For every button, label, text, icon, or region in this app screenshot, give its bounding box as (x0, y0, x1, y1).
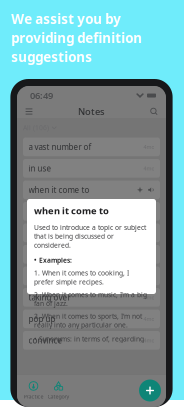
button[interactable]: lots of (23, 266, 160, 285)
button[interactable]: convince (23, 331, 160, 350)
staticText: 1. When it comes to cooking, I prefer si… (34, 269, 129, 286)
staticText: Used to introduce a topic or subject tha… (34, 223, 146, 250)
staticText: We assist you by (11, 10, 121, 28)
button[interactable]: Menu (22, 105, 36, 117)
staticText: suggestions (11, 48, 92, 66)
staticText: 4mo (143, 315, 154, 322)
staticText: providing definition (11, 29, 142, 47)
button[interactable]: as well as (23, 202, 160, 221)
staticText: as well as (29, 206, 64, 217)
staticText: Category (47, 393, 69, 400)
staticText: 4mo (143, 294, 154, 301)
staticText: 4mo (143, 229, 154, 236)
button[interactable]: Category (46, 377, 71, 403)
staticText: • Synonyms: in terms of, regarding (34, 334, 144, 343)
staticText: a vast number of (29, 141, 92, 152)
button[interactable]: pop up (23, 309, 160, 328)
button[interactable]: a vast number of (23, 137, 160, 156)
staticText: in order to (29, 249, 69, 260)
staticText: when it come to (34, 204, 109, 217)
staticText: taking over (29, 292, 71, 303)
button[interactable]: taking over (23, 288, 160, 307)
staticText: 4mo (143, 337, 154, 344)
button[interactable]: in order to (23, 245, 160, 264)
staticText: 2. When it comes to music, I'm a big fan… (34, 290, 147, 308)
staticText: lots of (29, 270, 53, 281)
staticText: • Examples: (34, 256, 72, 265)
staticText: in use (29, 163, 52, 174)
staticText: 3. When it comes to sports, I'm not real… (34, 312, 142, 329)
staticText: 06:49 (30, 89, 53, 102)
staticText: 4mo (143, 143, 154, 150)
button[interactable]: when it come to (23, 180, 160, 199)
button[interactable]: Practice (21, 377, 46, 403)
staticText: cope with (29, 227, 66, 238)
staticText: Practice (23, 393, 43, 400)
button[interactable]: in use (23, 159, 160, 178)
staticText: pop up (29, 313, 56, 324)
staticText: 4mo (143, 165, 154, 172)
staticText: Notes (78, 105, 105, 118)
button[interactable]: Search (147, 105, 161, 117)
staticText: convince (29, 335, 63, 346)
button[interactable]: cope with (23, 223, 160, 242)
staticText: when it come to (29, 184, 90, 195)
button[interactable]: Add note (139, 379, 161, 401)
